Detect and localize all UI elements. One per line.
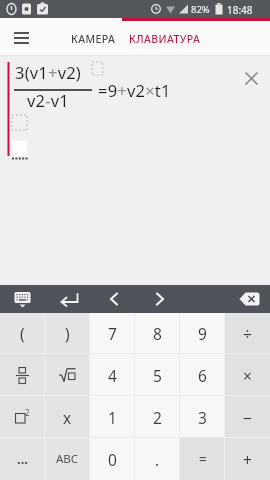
staticText: + bbox=[243, 449, 252, 470]
button[interactable]: ABC bbox=[45, 438, 90, 480]
staticText: − bbox=[243, 407, 252, 428]
staticText: 18:48 bbox=[227, 3, 253, 17]
staticText: × bbox=[243, 365, 252, 386]
button[interactable]: − bbox=[225, 396, 270, 438]
button[interactable]: ( bbox=[0, 313, 45, 354]
button[interactable]: 7 bbox=[90, 313, 135, 354]
staticText: КЛАВИАТУРА bbox=[129, 32, 201, 46]
button[interactable] bbox=[52, 285, 86, 313]
staticText: 4 bbox=[108, 365, 117, 386]
button[interactable]: 2 bbox=[0, 396, 45, 438]
button[interactable]: . bbox=[135, 438, 180, 480]
button[interactable]: 2 bbox=[135, 396, 180, 438]
staticText: . bbox=[155, 449, 160, 470]
staticText: 5 bbox=[153, 365, 162, 386]
staticText: x bbox=[63, 407, 72, 428]
staticText: 3(v1+v2) bbox=[15, 61, 82, 83]
button[interactable] bbox=[232, 285, 266, 313]
button[interactable]: КЛАВИАТУРА bbox=[122, 18, 208, 56]
staticText: 1 bbox=[108, 407, 117, 428]
button[interactable]: ÷ bbox=[225, 313, 270, 354]
staticText: 2 bbox=[153, 407, 162, 428]
staticText: ABC bbox=[56, 451, 79, 467]
button[interactable]: 9 bbox=[180, 313, 225, 354]
button[interactable]: 8 bbox=[135, 313, 180, 354]
button[interactable] bbox=[144, 285, 176, 313]
button[interactable] bbox=[0, 354, 45, 396]
button[interactable]: ... bbox=[0, 438, 45, 480]
staticText: ... bbox=[17, 450, 28, 468]
button[interactable]: КАМЕРА bbox=[60, 18, 126, 56]
button[interactable]: 1 bbox=[90, 396, 135, 438]
button[interactable]: 5 bbox=[135, 354, 180, 396]
button[interactable] bbox=[238, 65, 266, 93]
button[interactable]: 6 bbox=[180, 354, 225, 396]
staticText: v2-v1 bbox=[27, 89, 69, 111]
button[interactable] bbox=[98, 285, 130, 313]
button[interactable]: 4 bbox=[90, 354, 135, 396]
staticText: КАМЕРА bbox=[71, 32, 116, 46]
staticText: =9+v2×t1 bbox=[98, 79, 171, 101]
staticText: ) bbox=[65, 323, 70, 344]
button[interactable]: = bbox=[180, 438, 225, 480]
staticText: = bbox=[199, 450, 207, 468]
button[interactable]: + bbox=[225, 438, 270, 480]
staticText: ÷ bbox=[243, 323, 252, 344]
staticText: 2 bbox=[25, 407, 30, 418]
button[interactable]: × bbox=[225, 354, 270, 396]
button[interactable]: 0 bbox=[90, 438, 135, 480]
button[interactable] bbox=[5, 25, 37, 51]
staticText: 3 bbox=[198, 407, 207, 428]
staticText: 8 bbox=[153, 323, 162, 344]
button[interactable]: ) bbox=[45, 313, 90, 354]
staticText: 0 bbox=[108, 449, 117, 470]
staticText: 7 bbox=[108, 323, 117, 344]
staticText: 9 bbox=[198, 323, 207, 344]
button[interactable]: 3 bbox=[180, 396, 225, 438]
staticText: ( bbox=[20, 323, 25, 344]
button[interactable]: x bbox=[45, 396, 90, 438]
staticText: 6 bbox=[198, 365, 207, 386]
button[interactable] bbox=[6, 285, 39, 313]
button[interactable] bbox=[45, 354, 90, 396]
staticText: 82% bbox=[191, 3, 210, 16]
